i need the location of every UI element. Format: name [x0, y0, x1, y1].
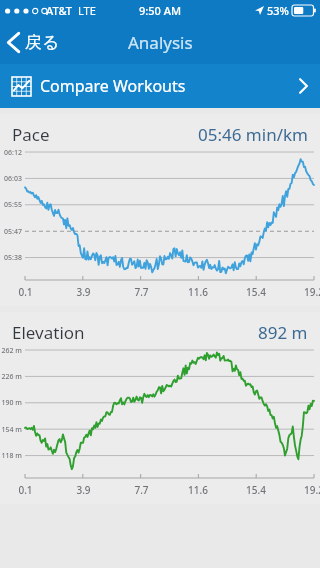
staticText: 9:50 AM	[139, 3, 182, 18]
staticText: 892 m	[258, 321, 308, 344]
button[interactable]: Pace	[0, 114, 320, 306]
staticText: 53%	[267, 3, 289, 18]
button[interactable]: Compare Workouts	[0, 64, 320, 108]
staticText: 19.2	[304, 483, 320, 497]
staticText: 11.6	[188, 483, 208, 497]
staticText: 118 m	[1, 451, 22, 461]
staticText: 0.1	[18, 483, 33, 497]
staticText: 154 m	[1, 425, 22, 435]
staticText: 15.4	[246, 483, 266, 497]
staticText: 7.7	[134, 285, 149, 299]
button[interactable]: 戻る	[0, 26, 70, 59]
staticText: 0.1	[18, 285, 33, 299]
staticText: 190 m	[1, 398, 22, 408]
button[interactable]: Elevation	[0, 312, 320, 504]
staticText: 06:03	[4, 174, 22, 184]
staticText: 262 m	[1, 346, 22, 356]
staticText: 05:47	[4, 227, 22, 237]
staticText: Elevation	[12, 321, 85, 344]
staticText: Analysis	[128, 31, 193, 54]
staticText: AT&T	[46, 3, 73, 18]
staticText: 7.7	[134, 483, 149, 497]
staticText: 3.9	[76, 285, 91, 299]
staticText: 05:55	[4, 200, 22, 210]
staticText: Pace	[12, 123, 50, 146]
staticText: 06:12	[4, 148, 22, 158]
staticText: Compare Workouts	[40, 75, 186, 97]
staticText: 05:46 min/km	[198, 123, 308, 146]
staticText: 05:38	[4, 253, 22, 263]
staticText: 15.4	[246, 285, 266, 299]
staticText: 戻る	[25, 32, 60, 53]
staticText: LTE	[78, 3, 96, 18]
staticText: 11.6	[188, 285, 208, 299]
staticText: 3.9	[76, 483, 91, 497]
staticText: 226 m	[1, 372, 22, 382]
staticText: 19.2	[304, 285, 320, 299]
